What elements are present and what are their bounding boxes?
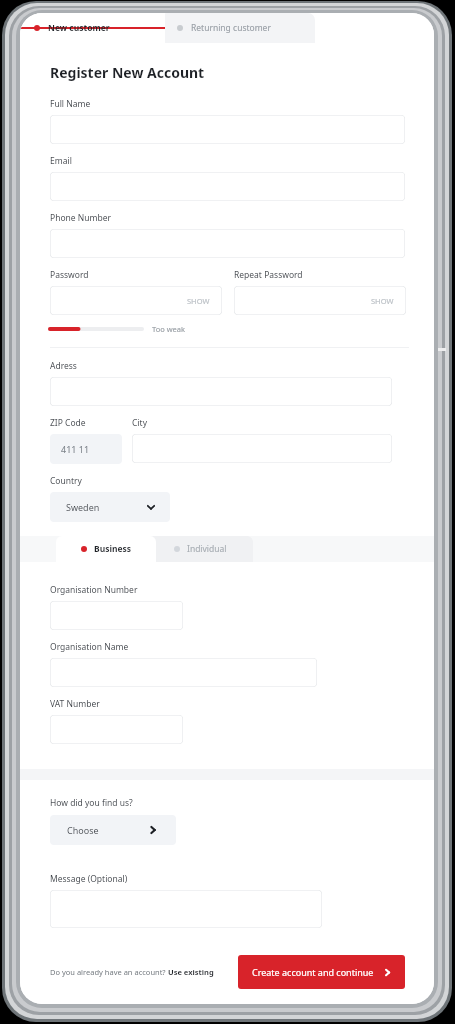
button[interactable]: Sweden: [50, 492, 170, 522]
staticText: Use existing: [168, 967, 214, 977]
staticText: Sweden: [66, 501, 100, 513]
button[interactable]: 411 11: [50, 434, 122, 464]
button[interactable]: SHOW: [234, 286, 406, 315]
staticText: Email: [50, 155, 72, 167]
staticText: City: [132, 417, 147, 429]
staticText: Individual: [187, 543, 227, 555]
staticText: New customer: [48, 22, 110, 34]
button[interactable]: New customer: [20, 13, 165, 43]
button[interactable]: [50, 601, 183, 630]
button[interactable]: [50, 890, 322, 928]
staticText: Message (Optional): [50, 873, 128, 885]
staticText: ZIP Code: [50, 417, 86, 429]
staticText: SHOW: [187, 296, 210, 306]
staticText: VAT Number: [50, 698, 100, 710]
button[interactable]: [50, 115, 405, 144]
button[interactable]: [50, 172, 405, 201]
button[interactable]: SHOW: [50, 286, 222, 315]
staticText: Business: [94, 543, 132, 555]
button[interactable]: Individual: [148, 536, 253, 562]
staticText: Create account and continue: [252, 966, 374, 978]
staticText: 411 11: [61, 443, 90, 455]
button[interactable]: [50, 715, 183, 744]
button[interactable]: [50, 377, 392, 406]
staticText: Country: [50, 475, 82, 487]
button[interactable]: Do you already have an account?: [50, 967, 214, 977]
button[interactable]: Create account and continue: [238, 955, 405, 989]
staticText: Full Name: [50, 98, 91, 110]
button[interactable]: Business: [56, 536, 156, 562]
staticText: Organisation Number: [50, 584, 138, 596]
staticText: Phone Number: [50, 212, 111, 224]
staticText: Do you already have an account?: [50, 967, 168, 977]
button[interactable]: Returning customer: [160, 13, 315, 43]
staticText: Repeat Password: [234, 269, 303, 281]
staticText: Returning customer: [191, 22, 271, 34]
staticText: Adress: [50, 360, 77, 372]
button[interactable]: [50, 229, 405, 258]
staticText: Password: [50, 269, 89, 281]
button[interactable]: Choose: [50, 815, 176, 845]
staticText: Register New Account: [50, 63, 205, 82]
button[interactable]: [132, 434, 392, 463]
staticText: How did you find us?: [50, 797, 133, 809]
staticText: Choose: [67, 824, 99, 836]
staticText: Organisation Name: [50, 641, 129, 653]
staticText: Too weak: [152, 324, 186, 334]
staticText: SHOW: [371, 296, 394, 306]
button[interactable]: [50, 658, 317, 687]
